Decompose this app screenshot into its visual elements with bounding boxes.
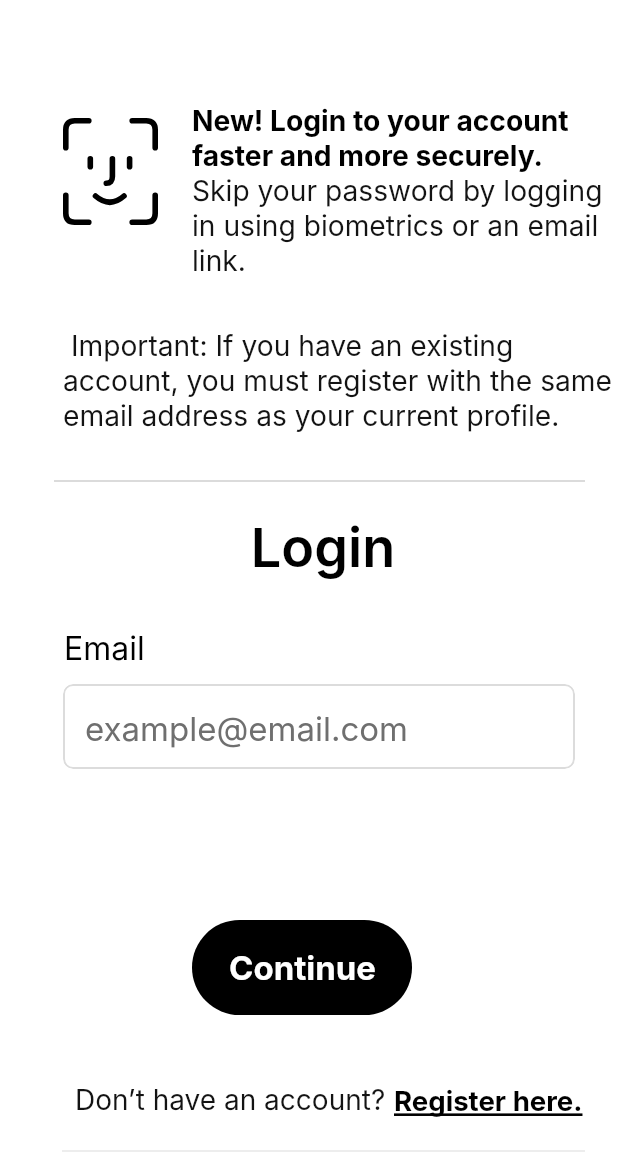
- staticText: example@email.com: [85, 709, 408, 749]
- staticText: New! Login to your account faster and mo…: [192, 104, 608, 278]
- staticText: Don’t have an account?: [75, 1083, 394, 1117]
- staticText: Register here.: [394, 1084, 583, 1117]
- other: Face ID: [63, 118, 158, 225]
- button[interactable]: Continue: [192, 920, 412, 1015]
- button[interactable]: Register here.: [394, 1084, 583, 1117]
- staticText: Login: [3, 515, 640, 580]
- button[interactable]: example@email.com: [63, 684, 575, 769]
- staticText: Email: [64, 629, 145, 668]
- staticText: Continue: [229, 948, 376, 988]
- staticText: Important: If you have an existing accou…: [63, 329, 629, 433]
